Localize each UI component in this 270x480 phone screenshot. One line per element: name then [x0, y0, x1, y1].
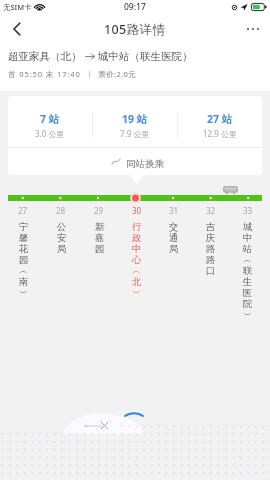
staticText: 交通局	[168, 221, 179, 255]
staticText: 31	[169, 205, 179, 216]
staticText: 09:17	[124, 1, 146, 13]
button[interactable]: 30	[118, 205, 155, 299]
staticText: 7 站	[40, 112, 60, 126]
button[interactable]: 19 站	[92, 96, 177, 147]
staticText: 7.9 公里	[120, 128, 150, 139]
button[interactable]: 31	[155, 205, 192, 255]
staticText: 票价:2.0元	[98, 69, 137, 79]
staticText: 105路详情	[104, 21, 166, 38]
staticText: 新嘉园	[94, 221, 105, 255]
staticText: 城中站︵联生医院︶	[242, 221, 253, 321]
staticText: 同站换乘	[126, 158, 164, 170]
staticText: 无SIM卡	[3, 2, 32, 12]
button[interactable]: 28	[42, 205, 80, 255]
staticText: 33	[243, 205, 253, 216]
button[interactable]: 33	[229, 205, 266, 321]
button[interactable]: 27	[4, 205, 42, 299]
staticText: 32	[206, 205, 216, 216]
staticText: 29	[94, 205, 104, 216]
staticText: 3.0 公里	[35, 128, 65, 139]
button[interactable]: 32	[192, 205, 229, 277]
button[interactable]: Back	[0, 14, 34, 44]
staticText: 30	[132, 205, 142, 216]
staticText: 19 站	[122, 112, 148, 126]
staticText: 28	[56, 205, 66, 216]
button[interactable]: 7 站	[8, 96, 92, 147]
staticText: 首 05:50 末 17:40	[8, 69, 81, 79]
staticText: 城中站（联生医院）	[98, 50, 193, 63]
staticText: 公安局	[56, 221, 67, 255]
staticText: 超亚家具（北）	[8, 50, 82, 63]
button[interactable]: 27 站	[177, 96, 262, 147]
button[interactable]: 29	[80, 205, 118, 255]
staticText: 12.9 公里	[203, 128, 237, 139]
button[interactable]: 同站换乘	[8, 148, 262, 175]
staticText: 27 站	[207, 112, 233, 126]
staticText: 行政中心︵北︶	[131, 221, 142, 299]
button[interactable]: More options	[236, 14, 270, 44]
staticText: 吉庆路路口	[205, 221, 216, 277]
staticText: 宁馨花园︵南︶	[18, 221, 29, 299]
staticText: 27	[18, 205, 28, 216]
